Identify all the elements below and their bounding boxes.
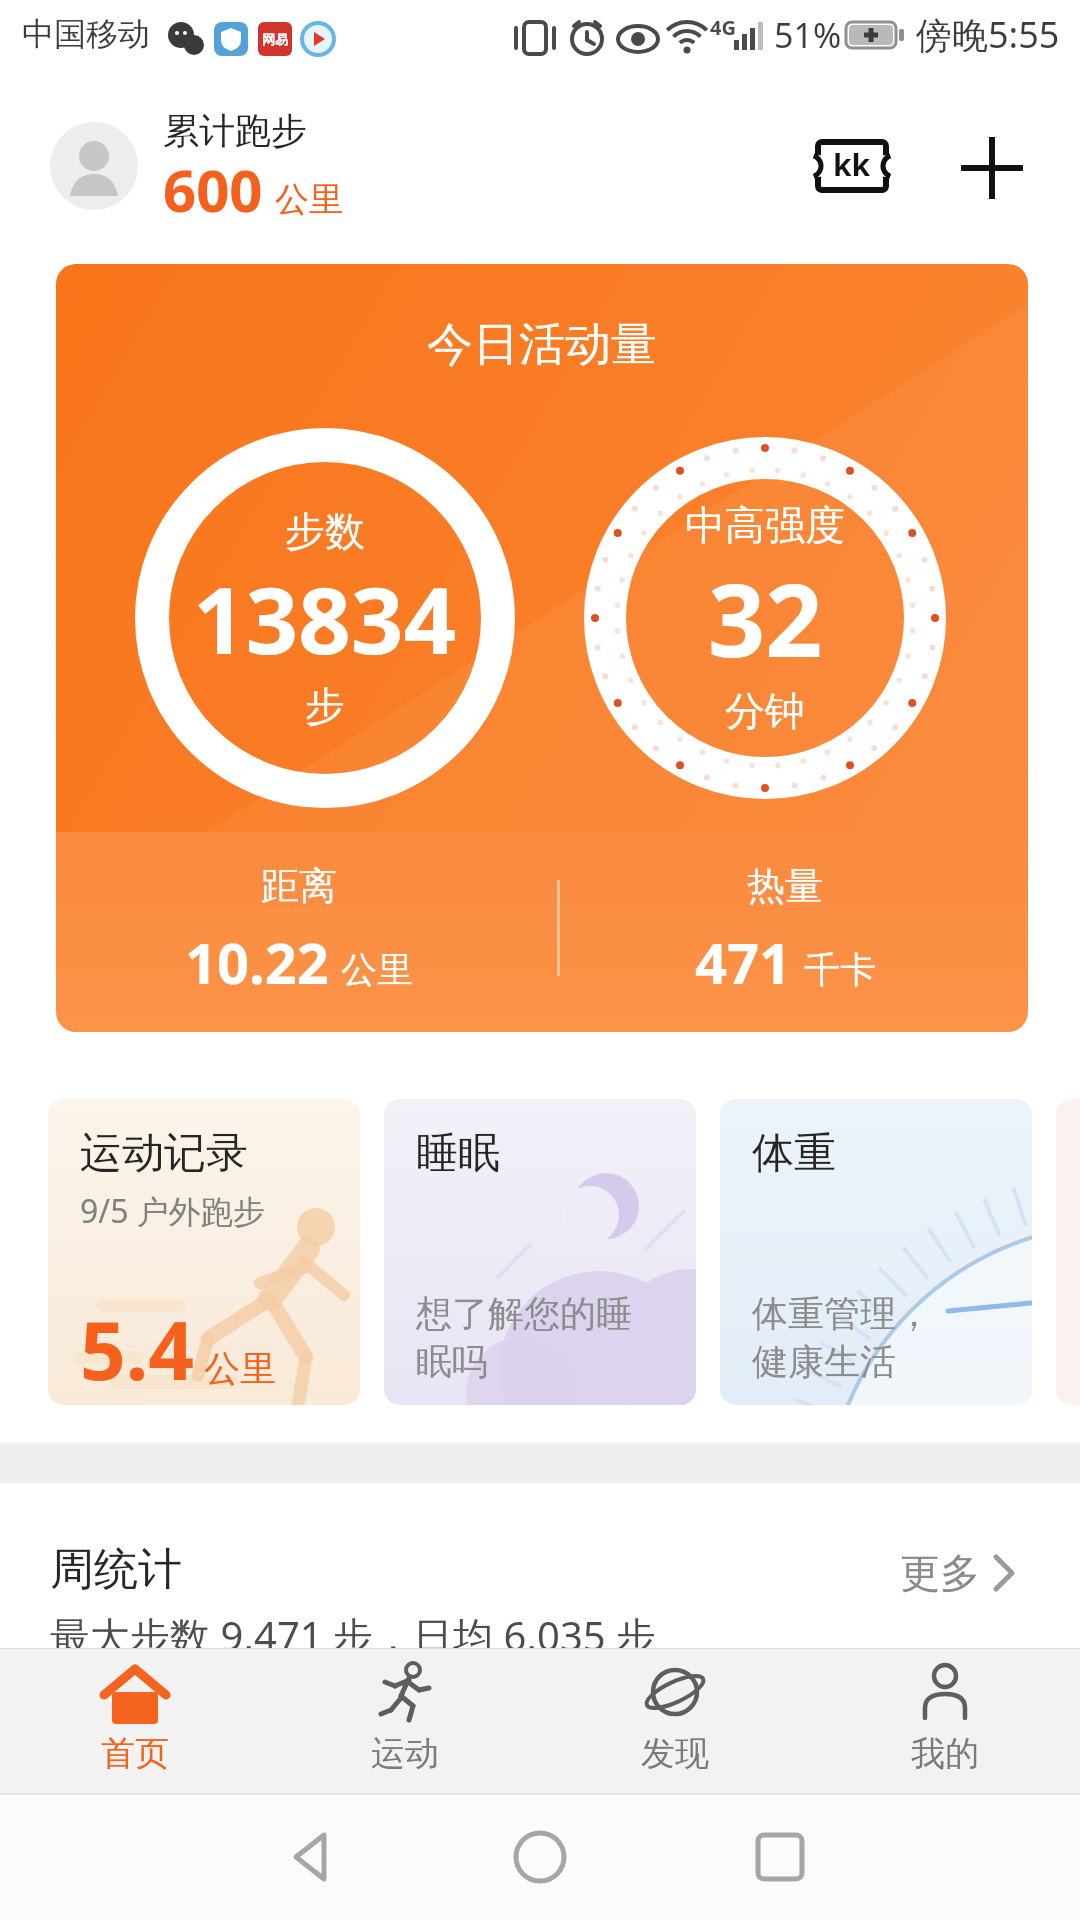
staticText: 累计跑步 <box>163 108 307 153</box>
staticText: 51% <box>774 12 842 58</box>
button[interactable]: kk <box>814 138 890 194</box>
staticText: 周统计 <box>50 1542 182 1597</box>
button[interactable] <box>50 122 138 210</box>
button[interactable]: 运动 <box>270 1648 540 1793</box>
staticText: 10.22 <box>185 924 329 1000</box>
button[interactable]: 更多 <box>900 1548 1016 1598</box>
staticText: 步 <box>305 681 345 731</box>
staticText: 600 <box>163 150 263 229</box>
staticText: 热量 <box>747 862 823 910</box>
staticText: 更多 <box>900 1548 980 1598</box>
staticText: kk <box>833 144 871 185</box>
staticText: 睡眠 <box>416 1127 500 1180</box>
staticText: 今日活动量 <box>427 316 657 374</box>
staticText: 公里 <box>275 178 343 221</box>
button[interactable]: 体重 <box>720 1099 1032 1405</box>
staticText: 公里 <box>204 1346 276 1391</box>
button[interactable]: 发现 <box>540 1648 810 1793</box>
button[interactable]: 今日活动量 <box>56 264 1028 1032</box>
staticText: 首页 <box>101 1732 169 1775</box>
staticText: 13834 <box>193 556 457 681</box>
staticText: 体重管理， 健康生活 <box>752 1291 932 1385</box>
staticText: 471 <box>695 924 792 1000</box>
staticText: 运动 <box>371 1732 439 1775</box>
staticText: 傍晚5:55 <box>916 10 1060 59</box>
staticText: 5.4 <box>80 1294 194 1403</box>
button[interactable] <box>952 128 1032 208</box>
button[interactable]: 我的 <box>810 1648 1080 1793</box>
staticText: 中高强度 <box>685 500 845 550</box>
button[interactable]: 睡眠 <box>384 1099 696 1405</box>
staticText: 运动记录 <box>80 1127 248 1180</box>
staticText: 最大步数 9,471 步，日均 6,035 步 <box>50 1608 657 1663</box>
staticText: 公里 <box>341 947 413 992</box>
staticText: 步数 <box>285 506 365 556</box>
button[interactable]: 首页 <box>0 1648 270 1793</box>
button[interactable]: 运动记录 <box>48 1099 360 1405</box>
staticText: 距离 <box>261 862 337 910</box>
staticText: 中国移动 <box>22 14 150 54</box>
staticText: 发现 <box>641 1732 709 1775</box>
staticText: 32 <box>708 550 823 686</box>
staticText: 想了解您的睡 眠吗 <box>416 1291 632 1385</box>
staticText: 我的 <box>911 1732 979 1775</box>
staticText: 网易 <box>262 31 288 47</box>
staticText: 千卡 <box>804 947 876 992</box>
staticText: 体重 <box>752 1127 836 1180</box>
staticText: 4G <box>710 14 736 41</box>
staticText: 分钟 <box>725 686 805 736</box>
staticText: 9/5 户外跑步 <box>80 1189 265 1233</box>
